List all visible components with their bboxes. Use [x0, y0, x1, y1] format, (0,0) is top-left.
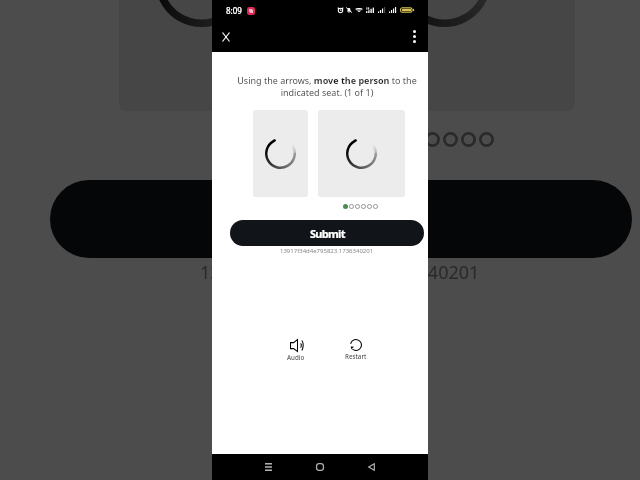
staticText: Submit	[310, 226, 345, 241]
staticText: 13917f34d4e795823.1736340201	[200, 261, 482, 285]
staticText: Using the arrows, move the person to the…	[230, 74, 424, 99]
button[interactable]: Restart	[344, 339, 368, 360]
button[interactable]: Close	[213, 24, 238, 49]
button[interactable]: More options	[402, 24, 427, 49]
staticText: Submit	[290, 198, 395, 243]
staticText: Audio	[287, 353, 305, 361]
button[interactable]: Submit	[50, 180, 632, 258]
button[interactable]: Submit	[230, 220, 424, 246]
staticText: 8:09	[226, 5, 242, 16]
button[interactable]: Home	[309, 454, 331, 480]
staticText: Restart	[345, 352, 367, 360]
button[interactable]: Recent apps	[257, 454, 279, 480]
staticText: 13917f34d4e795823.1736340201	[280, 247, 374, 255]
staticText: %	[249, 8, 254, 15]
button[interactable]: Audio	[284, 339, 308, 361]
button[interactable]: Back	[360, 454, 382, 480]
